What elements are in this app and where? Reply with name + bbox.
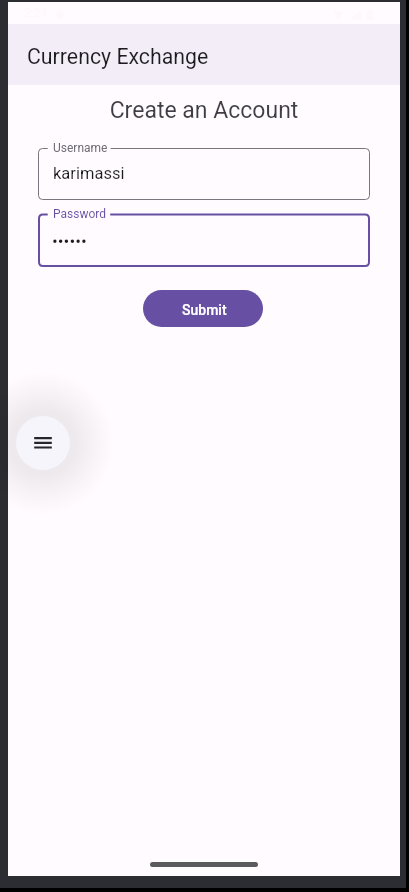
staticText: Currency Exchange [27,44,209,69]
staticText: Create an Account [8,97,400,124]
staticText: karimassi [53,164,125,183]
staticText: Password [53,207,107,221]
staticText: Submit [182,302,227,318]
staticText: Username [53,141,108,155]
staticText: •••••• [52,231,87,251]
button[interactable]: Submit [143,290,263,327]
button[interactable]: Open navigation menu [16,416,70,470]
